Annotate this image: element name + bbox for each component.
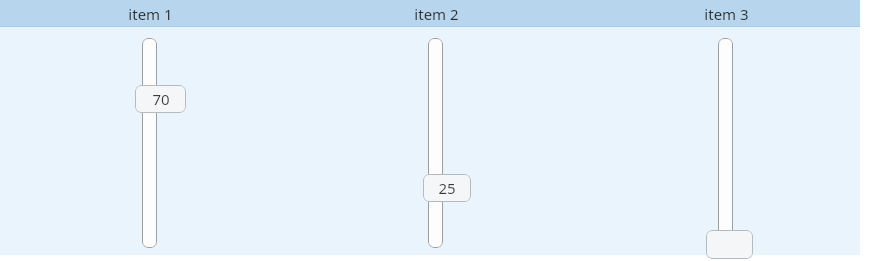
button[interactable]: item 3 slider <box>706 230 753 259</box>
button[interactable]: item 3 <box>646 0 806 27</box>
button[interactable]: item 1 slider, value 70 <box>135 85 186 113</box>
button[interactable]: item 2 <box>356 0 516 27</box>
button[interactable]: item 2 slider, value 25 <box>423 174 471 202</box>
staticText: item 2 <box>414 4 459 24</box>
staticText: item 3 <box>704 4 749 24</box>
staticText: 25 <box>438 178 456 198</box>
staticText: 70 <box>152 89 170 109</box>
staticText: item 1 <box>128 4 173 24</box>
button[interactable]: item 1 <box>70 0 230 27</box>
